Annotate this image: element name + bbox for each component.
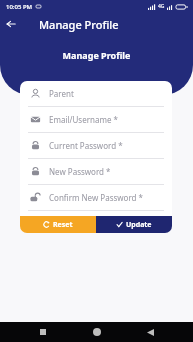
button[interactable]: Recent apps [32,322,54,342]
staticText: Manage Profile [39,17,119,32]
button[interactable]: Back [0,13,22,35]
button[interactable]: Email/Username * [20,107,172,133]
staticText: 10:05 PM [6,3,33,11]
staticText: Manage Profile [0,49,193,61]
staticText: New Password * [49,166,111,177]
staticText: Reset [53,220,73,230]
button[interactable]: Home [86,322,108,342]
staticText: Email/Username * [49,114,118,125]
staticText: Current Password * [49,140,123,151]
staticText: Update [126,220,152,230]
button[interactable]: Reset [20,216,96,233]
button[interactable]: Confirm New Password * [20,185,172,211]
staticText: Confirm New Password * [49,192,143,203]
button[interactable]: Current Password * [20,133,172,159]
button[interactable]: Parent [20,81,172,107]
staticText: 4G [158,3,165,10]
button[interactable]: Update [96,216,172,233]
staticText: Parent [49,88,74,99]
button[interactable]: Back [139,322,161,342]
button[interactable]: New Password * [20,159,172,185]
